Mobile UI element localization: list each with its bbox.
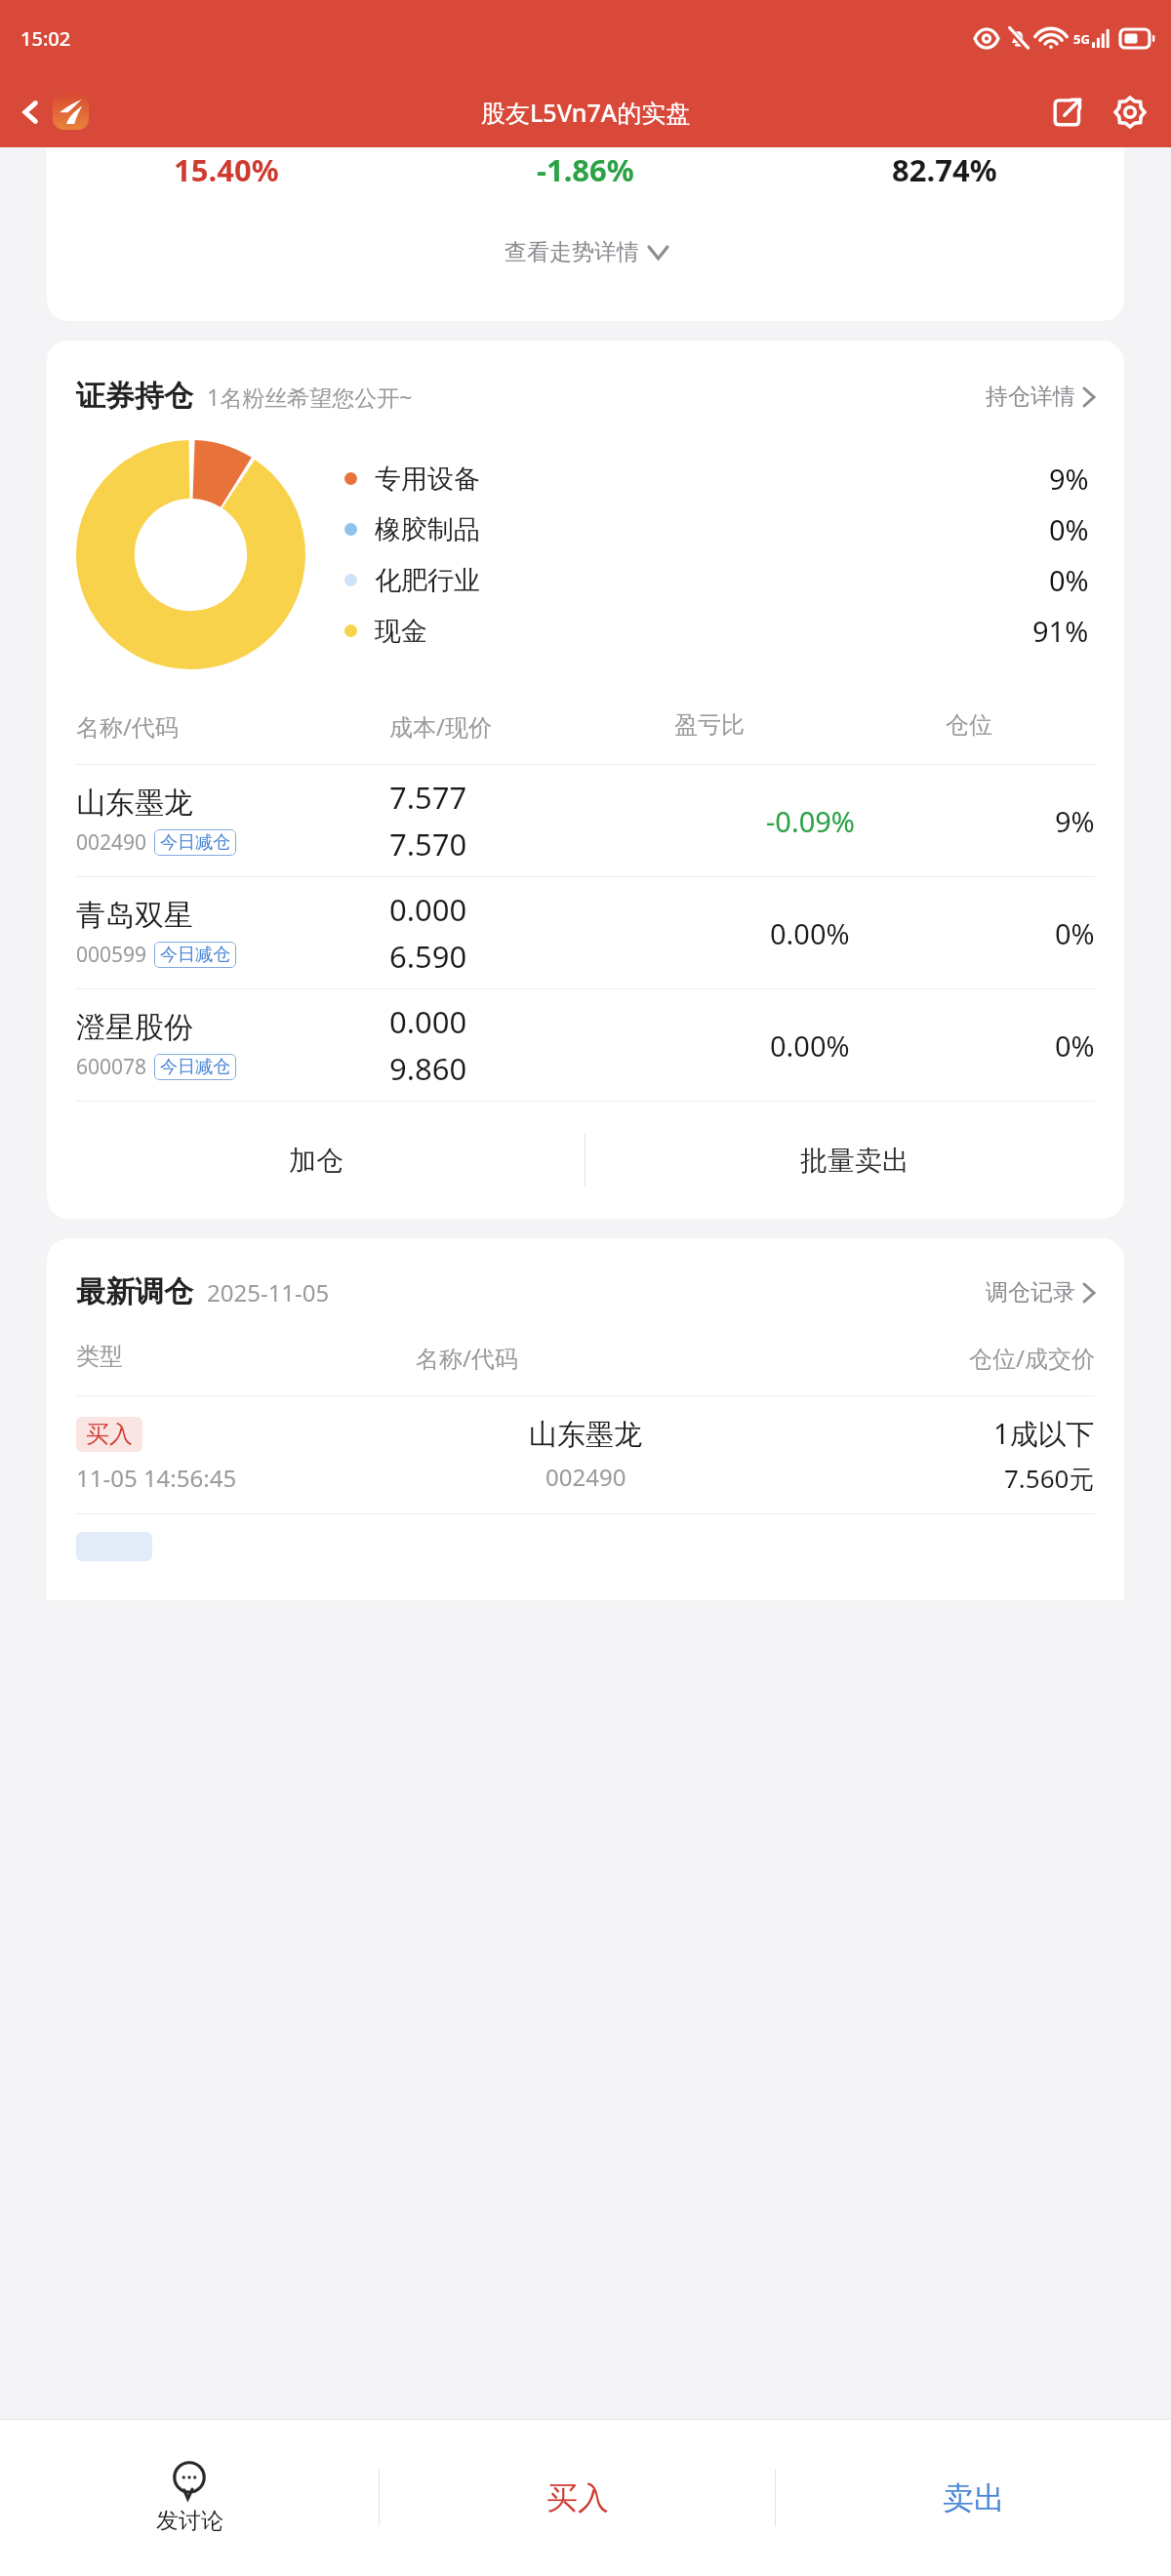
staticText: 名称/代码 [76,710,389,743]
staticText: 0% [1049,561,1089,599]
staticText: 82.74% [892,149,997,190]
staticText: 现金 [375,615,427,648]
staticText: 批量卖出 [800,1144,909,1178]
staticText: 7.570 [389,824,467,865]
button[interactable]: 青岛双星 [47,877,1124,988]
button[interactable]: Share [1046,91,1089,134]
button[interactable]: 卖出 [776,2420,1171,2576]
staticText: 600078 [76,1053,147,1081]
staticText: 专用设备 [375,463,480,496]
staticText: 000599 [76,941,147,969]
staticText: 卖出 [943,2478,1005,2517]
staticText: 0% [1049,510,1089,548]
staticText: 1成以下 [993,1414,1095,1453]
staticText: 青岛双星 [76,897,193,934]
staticText: 买入 [546,2478,609,2517]
staticText: 发讨论 [156,2507,223,2535]
staticText: 1名粉丝希望您公开~ [207,382,413,412]
staticText: 91% [1032,612,1089,650]
staticText: 0.000 [389,889,467,930]
staticText: 加仓 [289,1144,343,1178]
button[interactable]: 买入 [47,1396,1124,1513]
staticText: 0% [1055,1026,1095,1065]
staticText: 15:02 [20,25,71,52]
staticText: 今日减仓 [160,944,230,966]
staticText: 7.560元 [1004,1461,1095,1496]
staticText: 澄星股份 [76,1009,193,1046]
staticText: 0% [1055,914,1095,952]
staticText: 股友L5Vn7A的实盘 [481,96,691,129]
button[interactable]: 澄星股份 [47,989,1124,1101]
button[interactable]: 发讨论 [0,2420,379,2576]
button[interactable]: 山东墨龙 [47,765,1124,876]
staticText: 15.40% [174,149,279,190]
staticText: 2025-11-05 [207,1276,330,1308]
other: Back [14,95,49,130]
staticText: 仓位 [946,710,1095,740]
staticText: -1.86% [537,149,634,190]
button[interactable]: 15.40% [47,147,1124,321]
staticText: 仓位/成交价 [969,1342,1095,1374]
button[interactable]: 批量卖出 [585,1102,1124,1219]
staticText: 成本/现价 [389,710,674,743]
staticText: 0.00% [770,1026,850,1065]
staticText: 今日减仓 [160,831,230,854]
staticText: 11-05 14:56:45 [76,1462,237,1494]
staticText: 盈亏比 [674,710,946,740]
staticText: 证券持仓 [76,378,193,415]
staticText: 查看走势详情 [505,238,639,266]
staticText: 持仓详情 [986,382,1075,411]
button[interactable]: 买入 [380,2420,775,2576]
staticText: 002490 [76,828,147,857]
staticText: 002490 [545,1461,626,1493]
staticText: 0.000 [389,1001,467,1042]
staticText: 9.860 [389,1048,467,1089]
button[interactable]: Settings [1109,91,1151,134]
staticText: 7.577 [389,777,467,818]
staticText: -0.09% [766,802,855,840]
staticText: 6.590 [389,936,467,977]
staticText: 5G [1073,30,1090,48]
staticText: 买入 [86,1420,133,1449]
staticText: 名称/代码 [416,1342,755,1374]
staticText: 类型 [76,1342,416,1371]
staticText: 9% [1055,802,1095,840]
staticText: 最新调仓 [76,1273,193,1310]
staticText: 今日减仓 [160,1056,230,1078]
staticText: 化肥行业 [375,564,480,597]
button[interactable]: Back [10,94,93,130]
button[interactable]: 加仓 [47,1102,585,1219]
staticText: 山东墨龙 [529,1417,642,1453]
button[interactable]: 调仓记录 [982,1274,1099,1310]
button[interactable]: 查看走势详情 [499,232,673,272]
staticText: 橡胶制品 [375,513,480,546]
staticText: 0.00% [770,914,850,952]
staticText: 山东墨龙 [76,785,193,822]
staticText: 9% [1049,460,1089,498]
staticText: 调仓记录 [986,1278,1075,1307]
button[interactable]: 持仓详情 [982,379,1099,415]
